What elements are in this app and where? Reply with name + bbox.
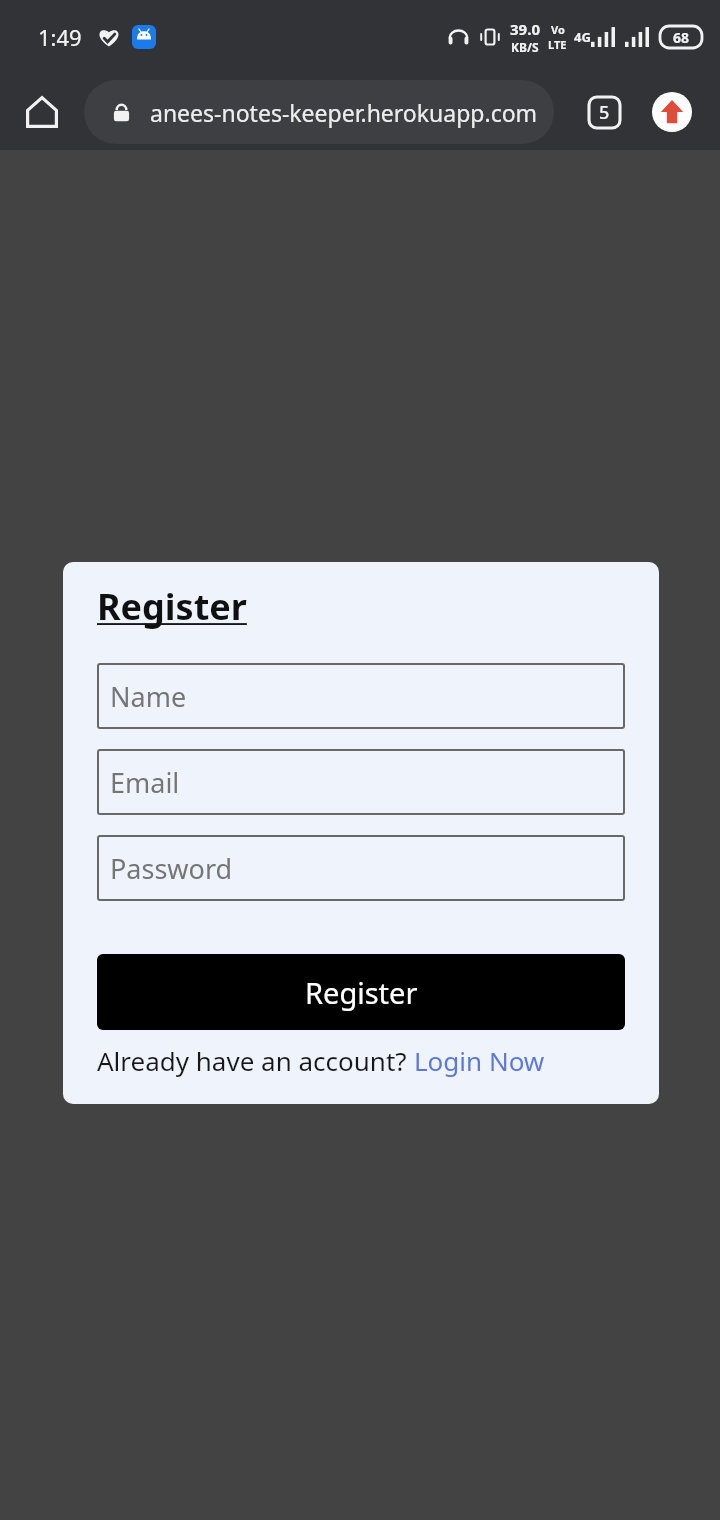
staticText: KB/S <box>511 39 539 55</box>
button[interactable]: Email <box>97 749 625 815</box>
staticText: Name <box>110 678 187 715</box>
button[interactable]: Tabs, 5 open <box>575 83 633 141</box>
button[interactable]: Scroll to top <box>644 84 700 140</box>
staticText: 5 <box>599 100 610 125</box>
button[interactable]: Name <box>97 663 625 729</box>
staticText: Already have an account? <box>97 1043 414 1078</box>
button[interactable]: Password <box>97 835 625 901</box>
button[interactable]: Register <box>97 954 625 1030</box>
button[interactable]: Home <box>13 83 71 141</box>
staticText: Register <box>305 973 418 1012</box>
button[interactable]: Login Now <box>414 1043 545 1078</box>
button[interactable]: anees-notes-keeper.herokuapp.com <box>84 80 554 144</box>
staticText: anees-notes-keeper.herokuapp.com <box>150 97 538 128</box>
staticText: 1:49 <box>38 22 82 52</box>
staticText: LTE <box>548 37 567 52</box>
staticText: 39.0 <box>510 19 540 39</box>
staticText: Register <box>97 582 247 631</box>
staticText: Password <box>110 850 233 887</box>
staticText: Login Now <box>414 1043 545 1078</box>
staticText: 4G <box>574 28 591 46</box>
staticText: Email <box>110 764 180 801</box>
staticText: Vo <box>551 22 565 37</box>
staticText: 68 <box>673 28 690 47</box>
